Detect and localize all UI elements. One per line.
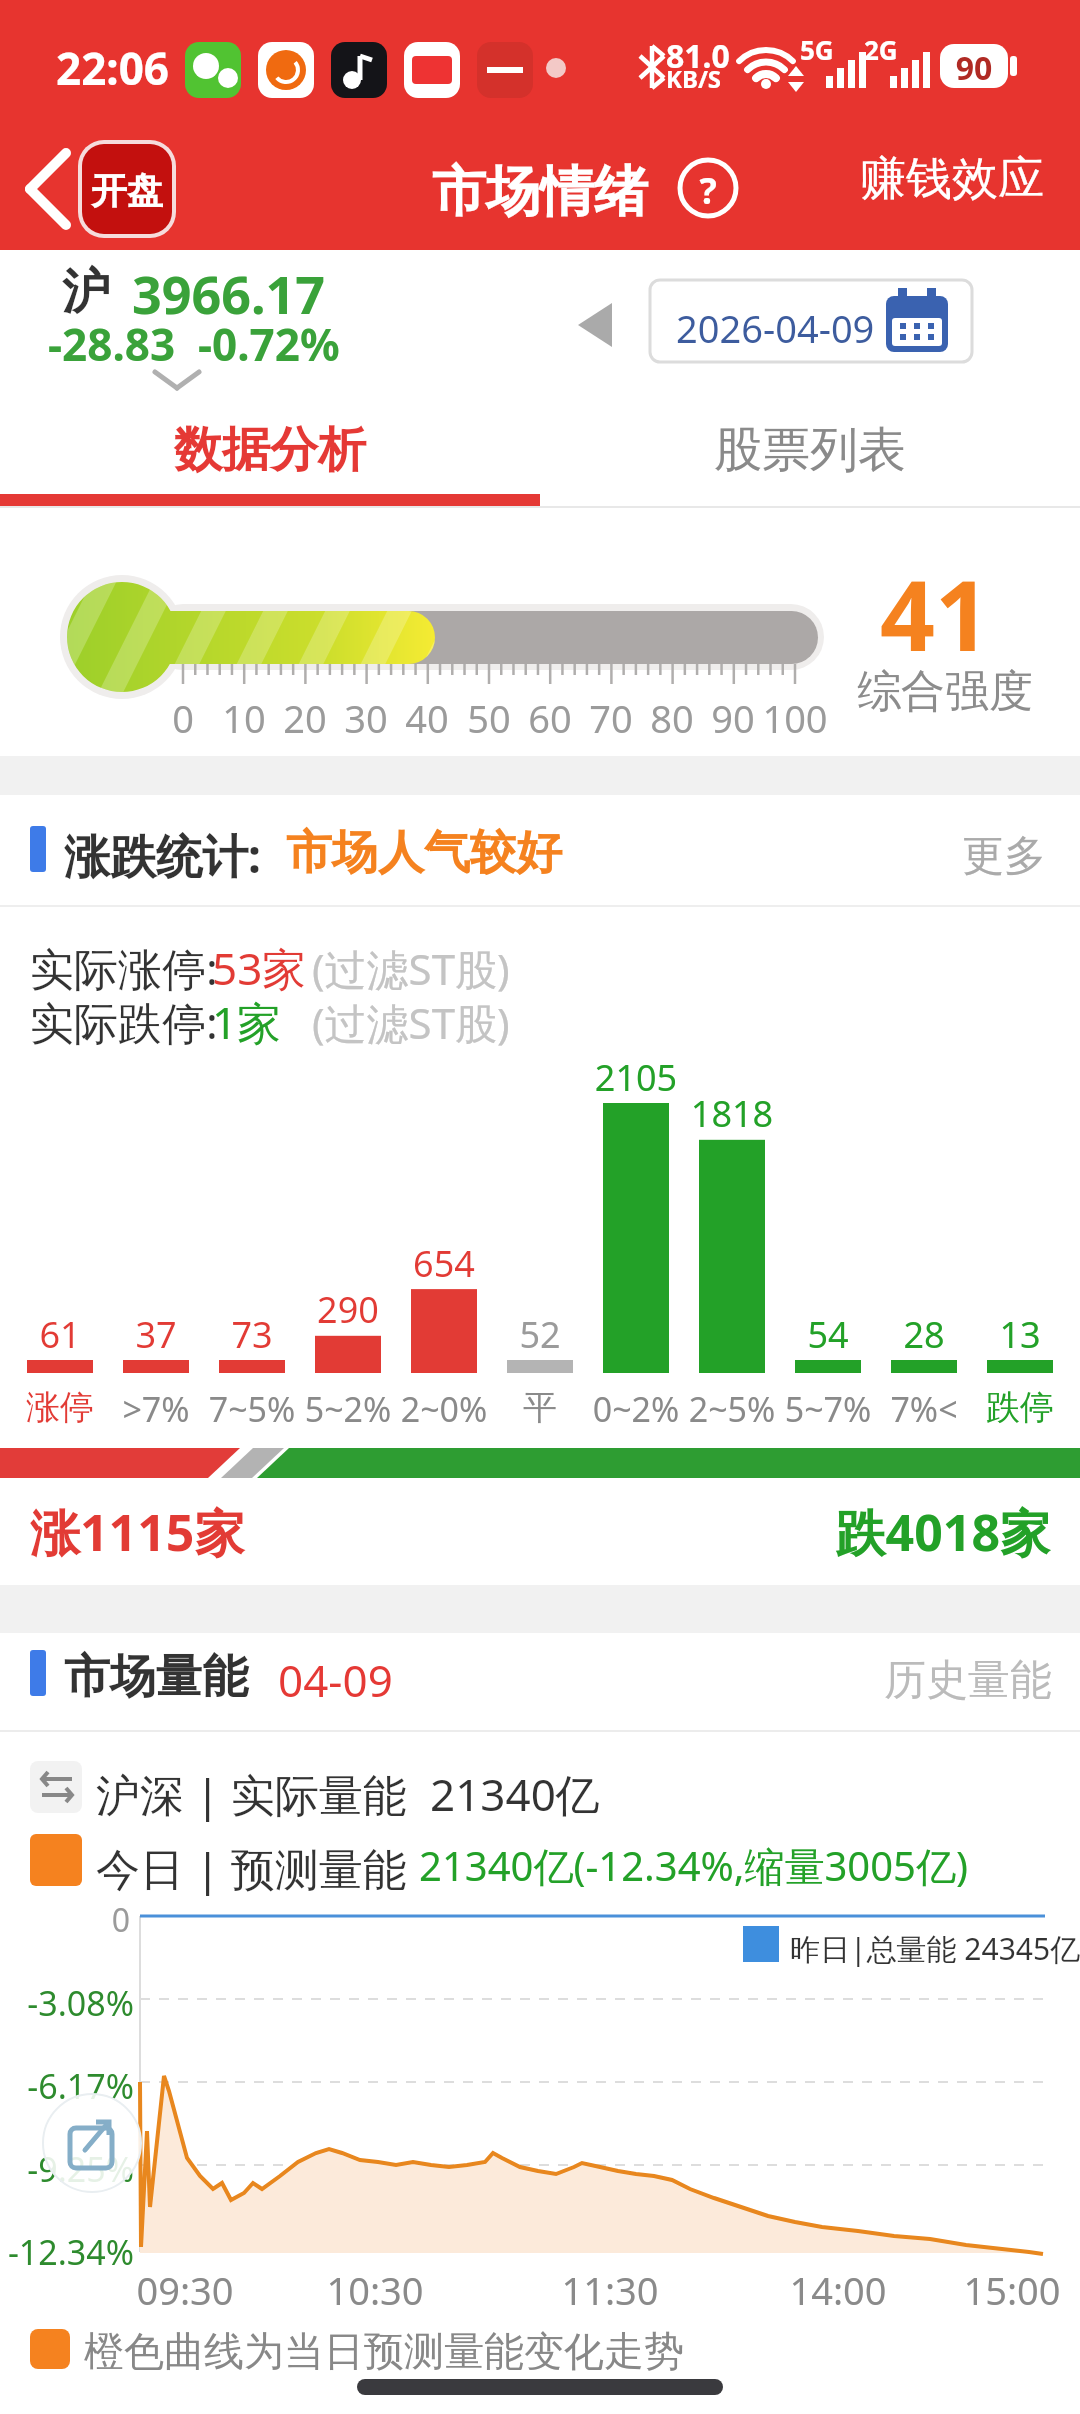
staticText: 21340亿(-12.34%,缩量3005亿): [419, 1838, 968, 1893]
staticText: 90: [533, 692, 933, 744]
staticText: 28: [724, 1310, 1080, 1359]
staticText: 14:00: [638, 2264, 1038, 2316]
staticText: 实际跌停:: [30, 992, 218, 1052]
staticText: 7~5%: [52, 1386, 452, 1432]
staticText: 历史量能: [884, 1654, 1052, 1707]
staticText: 20: [105, 692, 505, 744]
staticText: 5~2%: [148, 1386, 548, 1432]
staticText: 54: [628, 1310, 1028, 1359]
staticText: 81.0: [666, 34, 730, 78]
staticText: 市场情绪: [340, 158, 740, 226]
staticText: 0~2%: [436, 1386, 836, 1432]
staticText: 5G: [800, 32, 834, 67]
staticText: 100: [595, 692, 995, 744]
staticText: 涨停: [0, 1386, 260, 1429]
button[interactable]: 历史量能: [884, 1654, 1052, 1707]
staticText: 10: [44, 692, 444, 744]
staticText: 昨日|总量能 24345亿: [790, 1928, 1080, 1969]
staticText: 13: [820, 1310, 1080, 1359]
staticText: 沪深 | 实际量能 21340亿: [96, 1764, 600, 1824]
staticText: 90: [940, 46, 1008, 90]
staticText: 跌4018家: [650, 1498, 1050, 1566]
button[interactable]: 更多: [962, 830, 1046, 883]
staticText: 60: [350, 692, 750, 744]
staticText: 3966.17: [132, 258, 326, 329]
staticText: 2026-04-09: [676, 302, 875, 354]
staticText: 今日 | 预测量能: [96, 1838, 419, 1898]
staticText: 80: [472, 692, 872, 744]
staticText: 数据分析: [174, 420, 366, 480]
staticText: (过滤ST股): [312, 994, 510, 1051]
staticText: 市场量能: [64, 1648, 248, 1706]
staticText: 50: [289, 692, 689, 744]
staticText: 654: [244, 1239, 644, 1288]
staticText: 2105: [436, 1053, 836, 1102]
staticText: 290: [148, 1285, 548, 1334]
staticText: -3.08%: [14, 1980, 134, 2026]
staticText: 2~5%: [532, 1386, 932, 1432]
staticText: >7%: [0, 1386, 356, 1432]
staticText: 73: [52, 1310, 452, 1359]
staticText: 股票列表: [714, 420, 906, 480]
staticText: 37: [0, 1310, 356, 1359]
staticText: 涨跌统计:: [64, 824, 261, 887]
staticText: (过滤ST股): [312, 940, 510, 997]
button[interactable]: [43, 2094, 141, 2192]
staticText: 10:30: [175, 2264, 575, 2316]
staticText: 2G: [864, 32, 898, 67]
button[interactable]: 赚钱效应: [860, 150, 1044, 208]
staticText: 2~0%: [244, 1386, 644, 1432]
staticText: 61: [0, 1310, 260, 1359]
staticText: 0: [100, 1898, 130, 1942]
staticText: 52: [340, 1310, 740, 1359]
staticText: -12.34%: [6, 2229, 134, 2275]
button[interactable]: 股票列表: [540, 400, 1080, 500]
staticText: 1818: [532, 1089, 932, 1138]
staticText: 跌停: [820, 1386, 1080, 1429]
staticText: 70: [411, 692, 811, 744]
staticText: 综合强度: [745, 664, 1080, 719]
staticText: 开盘: [0, 168, 327, 213]
staticText: -28.83 -0.72%: [48, 314, 340, 374]
staticText: 22:06: [56, 38, 170, 98]
staticText: 7%<: [724, 1386, 1080, 1432]
staticText: 11:30: [410, 2264, 810, 2316]
staticText: 40: [227, 692, 627, 744]
button[interactable]: 数据分析: [0, 400, 540, 500]
staticText: 30: [166, 692, 566, 744]
staticText: 1家: [212, 992, 282, 1052]
staticText: -6.17%: [14, 2063, 134, 2109]
staticText: 市场人气较好: [286, 824, 562, 882]
staticText: KB/S: [666, 62, 722, 95]
staticText: 实际涨停:: [30, 938, 218, 998]
staticText: 5~7%: [628, 1386, 1028, 1432]
staticText: 更多: [962, 830, 1046, 883]
staticText: 沪: [62, 262, 110, 322]
staticText: ?: [508, 166, 908, 215]
button[interactable]: [650, 280, 972, 362]
staticText: 橙色曲线为当日预测量能变化走势: [84, 2326, 684, 2376]
staticText: -9.25%: [14, 2146, 134, 2192]
staticText: 04-09: [278, 1650, 393, 1710]
staticText: 0: [0, 692, 383, 744]
staticText: 09:30: [0, 2264, 385, 2316]
staticText: 53家: [212, 938, 307, 998]
staticText: 15:00: [812, 2264, 1080, 2316]
staticText: 涨1115家: [30, 1498, 245, 1566]
button[interactable]: [20, 145, 80, 235]
staticText: 赚钱效应: [860, 150, 1044, 208]
staticText: 平: [340, 1386, 740, 1429]
staticText: 41: [735, 548, 1080, 679]
